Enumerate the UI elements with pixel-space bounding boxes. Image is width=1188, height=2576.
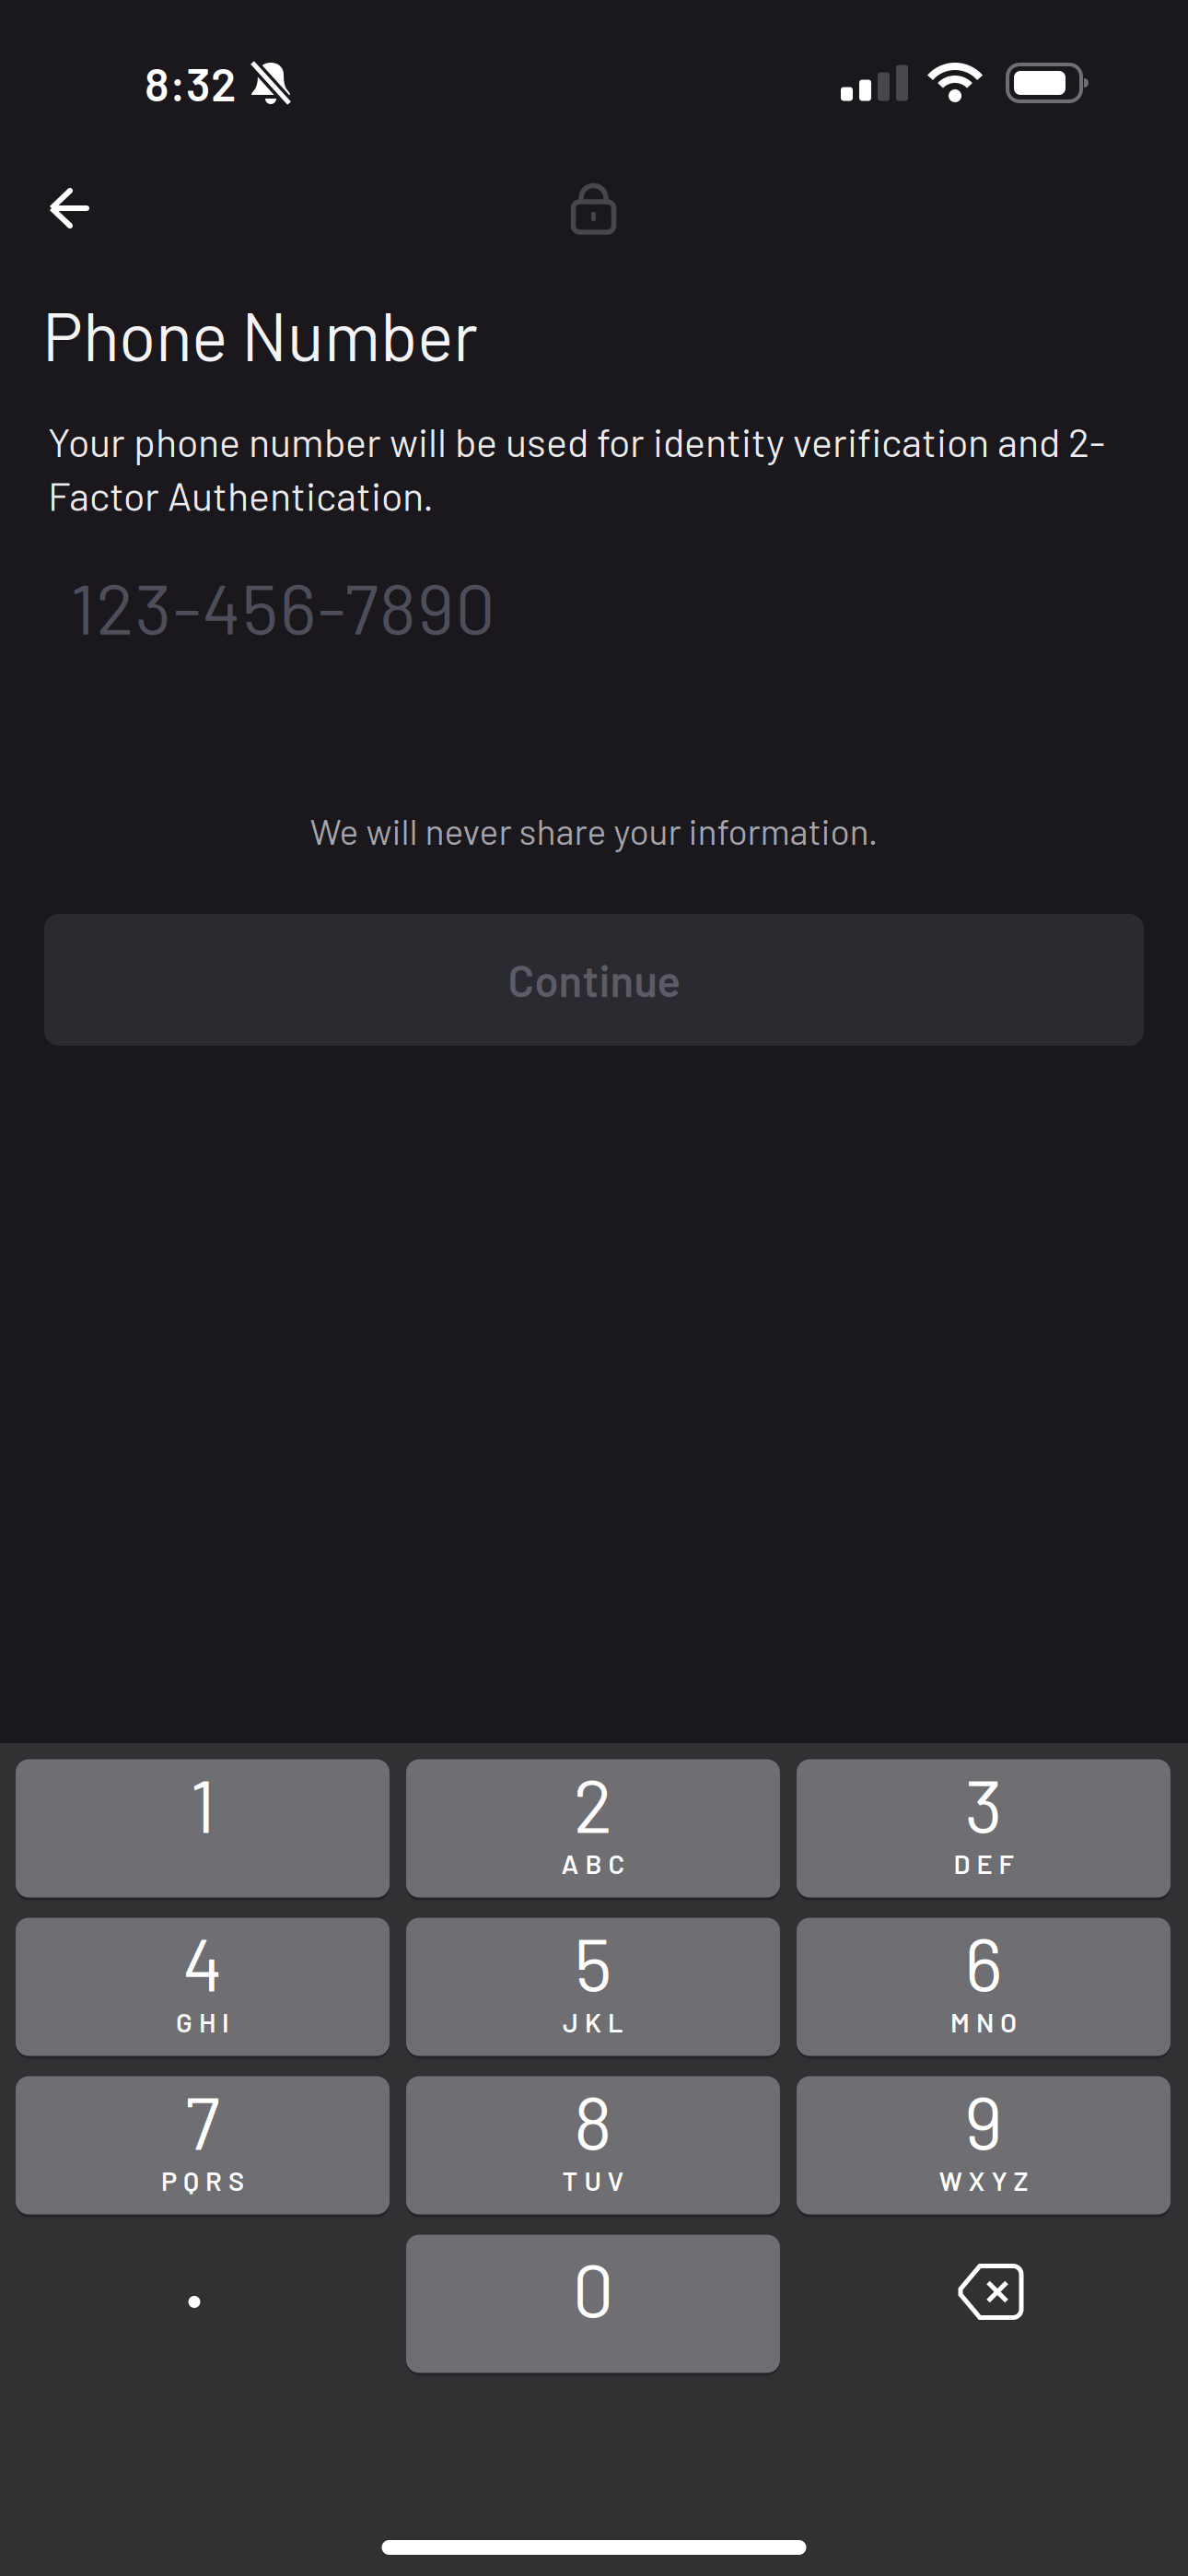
staticText: ABC <box>561 1847 625 1879</box>
button[interactable]: 0 <box>406 2233 780 2374</box>
staticText: 1 <box>190 1759 215 1848</box>
staticText: 6 <box>965 1918 1002 2006</box>
button[interactable]: 6 <box>797 1916 1171 2057</box>
staticText: We will never share your information. <box>310 809 878 852</box>
staticText: GHI <box>176 2006 229 2038</box>
button[interactable]: 1 <box>16 1758 390 1899</box>
button[interactable]: 9 <box>797 2075 1171 2216</box>
staticText: 8:32 <box>145 55 237 111</box>
staticText: 8 <box>574 2076 612 2165</box>
button[interactable]: Decimal point <box>16 2233 390 2374</box>
staticText: 4 <box>182 1918 223 2006</box>
staticText: PQRS <box>161 2164 244 2196</box>
staticText: Factor Authentication. <box>48 471 434 519</box>
staticText: DEF <box>954 1847 1013 1879</box>
staticText: Continue <box>508 954 680 1006</box>
staticText: 9 <box>964 2076 1003 2165</box>
button[interactable]: Delete <box>797 2233 1171 2374</box>
staticText: Your phone number will be used for ident… <box>48 417 1105 465</box>
button[interactable]: Back <box>47 184 91 230</box>
button[interactable]: 7 <box>16 2075 390 2216</box>
staticText: JKL <box>563 2006 623 2038</box>
staticText: 0 <box>572 2244 614 2332</box>
staticText: TUV <box>562 2164 624 2196</box>
button[interactable]: 5 <box>406 1916 780 2057</box>
button[interactable]: Continue <box>44 914 1144 1046</box>
staticText: Phone Number <box>42 293 478 375</box>
button[interactable]: 2 <box>406 1758 780 1899</box>
staticText: 7 <box>185 2076 220 2165</box>
staticText: WXYZ <box>939 2164 1028 2196</box>
staticText: MNO <box>950 2006 1017 2038</box>
staticText: 5 <box>574 1918 612 2006</box>
staticText: 2 <box>573 1759 613 1848</box>
staticText: 123-456-7890 <box>70 564 496 649</box>
staticText: 3 <box>965 1759 1002 1848</box>
button[interactable]: 4 <box>16 1916 390 2057</box>
button[interactable]: 8 <box>406 2075 780 2216</box>
button[interactable]: 3 <box>797 1758 1171 1899</box>
